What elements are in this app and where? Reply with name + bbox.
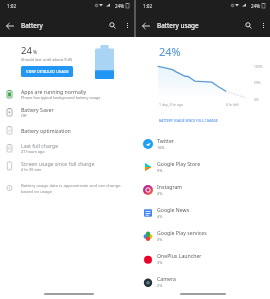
staticText: Should last until about 9:45 [21,57,73,62]
staticText: Instagram [157,183,183,190]
button[interactable]: VIEW DETAILED USAGE [21,66,73,77]
staticText: Apps are running normally [21,88,87,95]
staticText: 2% [157,283,163,288]
button[interactable]: Back [2,18,17,33]
staticText: Google Play services [157,229,207,236]
button[interactable]: Twitter [136,132,270,155]
button[interactable]: Back [138,18,153,33]
staticText: 3% [157,237,163,242]
button[interactable]: Apps are running normally [0,85,134,103]
staticText: Battery usage data is approximate and ca… [21,183,121,194]
staticText: Battery Saver [21,106,54,113]
staticText: OnePlus Launcher [157,252,202,259]
staticText: Phone has typical background battery usa… [21,95,101,100]
staticText: Screen usage since full charge [21,160,95,167]
staticText: 0% [254,97,259,101]
staticText: 27 hours ago [21,149,45,154]
button[interactable]: Battery optimization [0,121,134,139]
staticText: 1 day, 3 hr ago [159,102,184,107]
staticText: Google News [157,206,190,213]
button[interactable]: OnePlus Launcher [136,247,270,270]
staticText: 3% [157,260,163,265]
staticText: 4% [157,214,163,219]
staticText: 24 [21,44,32,57]
button[interactable]: Google Play Store [136,155,270,178]
staticText: Twitter [157,137,175,144]
button[interactable]: Search [105,18,119,32]
button[interactable]: Battery usage data is approximate and ca… [0,179,134,197]
staticText: Battery [21,21,43,30]
staticText: VIEW DETAILED USAGE [26,69,69,74]
staticText: 6 hr left [226,102,239,107]
staticText: 24% [115,3,125,9]
staticText: 100% [254,64,263,68]
staticText: % [33,49,38,56]
button[interactable]: Instagram [136,178,270,201]
staticText: Google Play Store [157,160,201,167]
staticText: 1:02 [7,3,17,9]
staticText: Last full charge [21,142,59,149]
button[interactable]: Camera [136,270,270,293]
button[interactable]: Google Play services [136,224,270,247]
staticText: 1:02 [143,3,153,9]
button[interactable]: Google News [136,201,270,224]
button[interactable]: Screen usage since full charge [0,157,134,175]
staticText: Off [21,113,27,118]
button[interactable]: More options [257,19,269,31]
staticText: 9% [157,168,163,173]
button[interactable]: Battery Saver [0,103,134,121]
staticText: 24% [251,3,261,9]
button[interactable]: Last full charge [0,139,134,157]
staticText: BATTERY USAGE SINCE FULL CHARGE [159,118,218,123]
staticText: Battery optimization [21,127,71,134]
staticText: 24% [159,44,181,59]
button[interactable]: More options [121,19,133,31]
staticText: 50% [254,80,261,84]
button[interactable]: Search [241,18,255,32]
staticText: 4 hr 35 min [21,167,42,172]
staticText: Battery usage [157,21,199,30]
staticText: 16% [157,145,165,150]
staticText: 4% [157,191,163,196]
staticText: Camera [157,275,176,282]
